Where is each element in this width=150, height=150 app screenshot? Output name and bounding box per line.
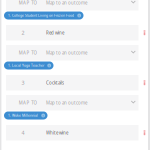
staticText: White wine bbox=[46, 130, 68, 136]
button[interactable]: Delete bbox=[140, 125, 149, 140]
staticText: 1. College Student Living on Frozen Food bbox=[8, 13, 74, 18]
button[interactable]: MAP TO bbox=[6, 95, 138, 110]
staticText: Red wine bbox=[46, 30, 64, 36]
staticText: 1. Woke Millennial bbox=[8, 113, 38, 118]
button[interactable]: 1. College Student Living on Frozen Food bbox=[4, 11, 83, 19]
button[interactable]: 1. Local Yoga Teacher bbox=[4, 61, 53, 69]
button[interactable]: MAP TO bbox=[6, 0, 138, 10]
staticText: Map to an outcome bbox=[46, 0, 87, 6]
staticText: x bbox=[42, 113, 44, 118]
staticText: 4 bbox=[21, 129, 24, 136]
staticText: MAP TO bbox=[19, 50, 36, 56]
staticText: 3 bbox=[21, 79, 24, 86]
staticText: MAP TO bbox=[19, 100, 36, 106]
staticText: Map to an outcome bbox=[46, 100, 87, 106]
button[interactable]: Delete bbox=[140, 75, 149, 90]
button[interactable]: 1. Woke Millennial bbox=[4, 111, 47, 119]
staticText: Map to an outcome bbox=[46, 50, 87, 56]
staticText: 1. Local Yoga Teacher bbox=[8, 63, 44, 68]
staticText: x bbox=[48, 63, 50, 68]
button[interactable]: MAP TO bbox=[6, 45, 138, 60]
staticText: Cocktails bbox=[46, 80, 64, 86]
staticText: 2 bbox=[21, 29, 24, 36]
staticText: MAP TO bbox=[19, 0, 36, 6]
button[interactable]: Delete bbox=[140, 25, 149, 40]
staticText: x bbox=[78, 13, 80, 18]
